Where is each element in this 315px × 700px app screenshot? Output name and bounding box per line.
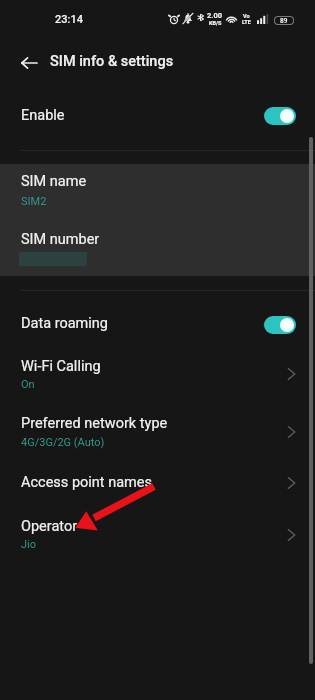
button[interactable]: [0, 508, 315, 556]
button[interactable]: [0, 465, 315, 505]
staticText: Preferred network type: [21, 415, 168, 432]
staticText: Wi-Fi Calling: [21, 358, 101, 375]
staticText: 2.00: [207, 11, 223, 20]
button[interactable]: [0, 306, 315, 346]
button[interactable]: Toggle: [264, 107, 296, 125]
button[interactable]: [0, 164, 315, 220]
button[interactable]: [0, 98, 315, 138]
staticText: SIM name: [21, 173, 87, 190]
staticText: On: [21, 378, 35, 391]
staticText: Operator: [21, 518, 78, 535]
button[interactable]: Back: [11, 45, 46, 81]
staticText: Data roaming: [21, 315, 108, 332]
staticText: SIM2: [21, 195, 47, 208]
button[interactable]: [0, 220, 315, 276]
staticText: LTE: [242, 19, 251, 25]
button[interactable]: [0, 348, 315, 396]
staticText: Access point names: [21, 474, 152, 491]
staticText: Enable: [21, 107, 65, 124]
staticText: SIM info & settings: [50, 53, 174, 70]
staticText: Vo: [243, 13, 250, 19]
staticText: SIM number: [21, 231, 100, 248]
staticText: 4G/3G/2G (Auto): [21, 436, 105, 449]
staticText: 89: [280, 17, 288, 24]
staticText: Jio: [21, 538, 37, 551]
button[interactable]: Toggle: [264, 316, 296, 334]
staticText: KB/S: [209, 20, 222, 26]
button[interactable]: [0, 406, 315, 454]
staticText: 23:14: [55, 13, 83, 26]
